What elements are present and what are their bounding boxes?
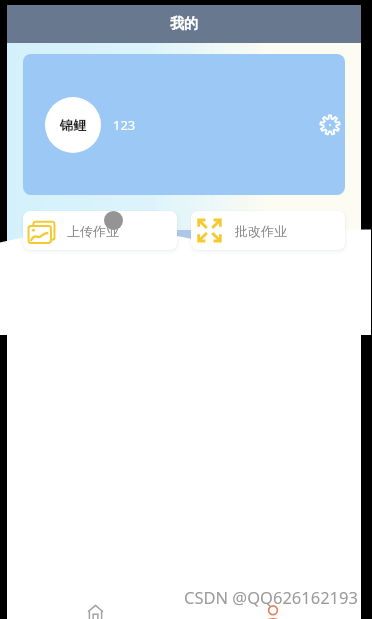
button[interactable]: Settings bbox=[319, 114, 341, 136]
button[interactable]: 批改作业 bbox=[191, 211, 345, 250]
button[interactable]: Profile bbox=[263, 605, 283, 619]
staticText: 批改作业 bbox=[235, 223, 287, 239]
staticText: 锦鲤 bbox=[60, 117, 86, 133]
staticText: 123 bbox=[113, 116, 136, 134]
staticText: 我的 bbox=[170, 15, 198, 33]
staticText: 上传作业 bbox=[67, 223, 119, 239]
button[interactable]: 上传作业 bbox=[23, 211, 177, 250]
staticText: CSDN @QQ626162193 bbox=[184, 586, 358, 608]
button[interactable]: 锦鲤 bbox=[23, 54, 345, 195]
button[interactable]: Home bbox=[87, 604, 104, 619]
